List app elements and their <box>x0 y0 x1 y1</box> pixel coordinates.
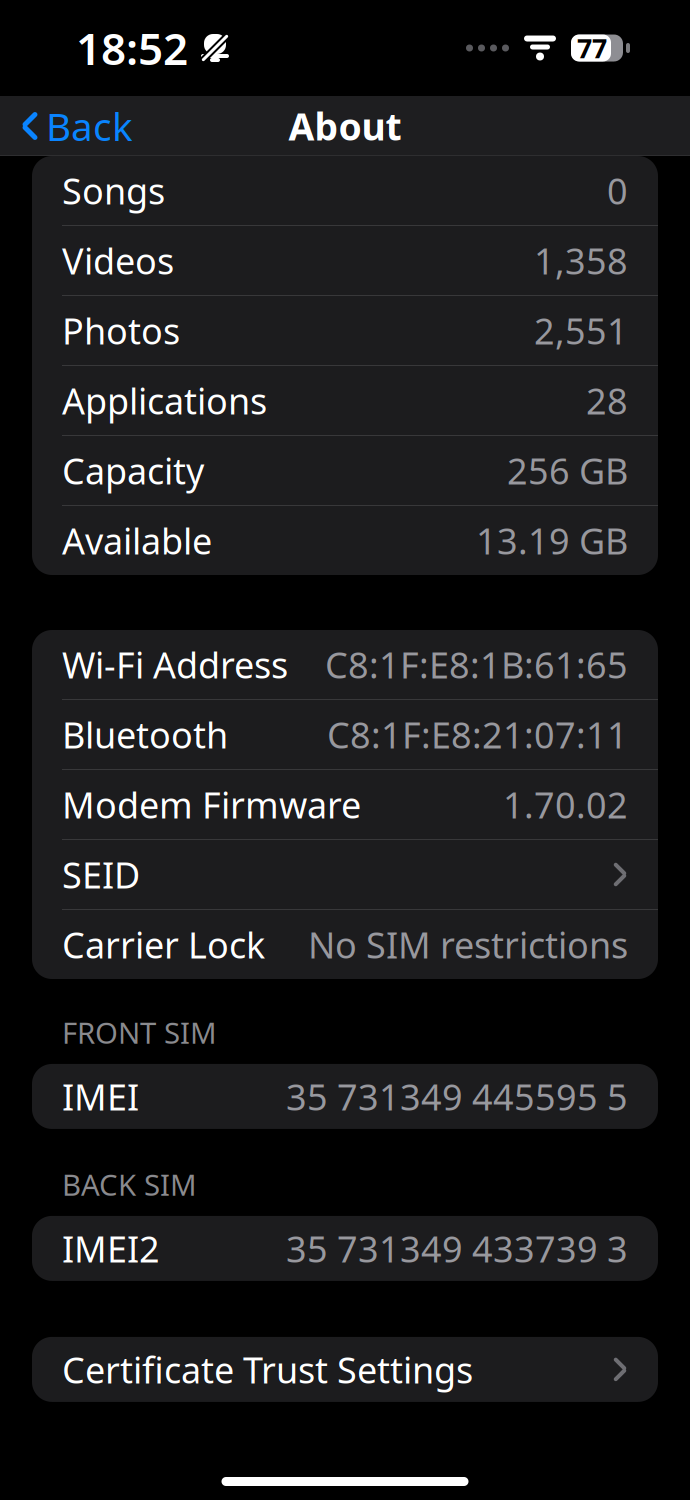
staticText: IMEI <box>62 1073 139 1120</box>
button[interactable]: Back <box>0 92 133 160</box>
button[interactable]: IMEI2 <box>32 1216 658 1281</box>
staticText: Back <box>46 100 133 152</box>
staticText: BACK SIM <box>62 1165 197 1204</box>
staticText: Applications <box>62 377 267 424</box>
button[interactable]: Songs <box>32 156 658 225</box>
button[interactable]: Photos <box>32 296 658 365</box>
staticText: Modem Firmware <box>62 781 361 828</box>
button[interactable]: Videos <box>32 226 658 295</box>
staticText: 35 731349 445595 5 <box>286 1073 628 1120</box>
staticText: 18:52 <box>76 19 188 77</box>
staticText: Capacity <box>62 447 204 494</box>
staticText: SEID <box>62 851 140 898</box>
button[interactable]: IMEI <box>32 1064 658 1129</box>
staticText: 28 <box>586 377 628 424</box>
staticText: Certificate Trust Settings <box>62 1345 473 1393</box>
staticText: About <box>288 101 401 151</box>
staticText: Videos <box>62 237 174 284</box>
staticText: 2,551 <box>534 307 628 354</box>
staticText: Carrier Lock <box>62 921 265 968</box>
button[interactable]: Capacity <box>32 436 658 505</box>
button[interactable]: Bluetooth <box>32 700 658 769</box>
staticText: FRONT SIM <box>62 1013 217 1052</box>
staticText: Songs <box>62 167 165 214</box>
staticText: Available <box>62 517 212 564</box>
staticText: 35 731349 433739 3 <box>286 1224 628 1272</box>
staticText: C8:1F:E8:21:07:11 <box>327 711 628 758</box>
staticText: IMEI2 <box>62 1224 160 1272</box>
staticText: C8:1F:E8:1B:61:65 <box>325 641 628 688</box>
staticText: 256 GB <box>507 447 628 494</box>
staticText: Wi-Fi Address <box>62 641 288 688</box>
staticText: 1.70.02 <box>503 781 628 828</box>
button[interactable]: Modem Firmware <box>32 770 658 839</box>
button[interactable]: Applications <box>32 366 658 435</box>
staticText: 13.19 GB <box>476 517 628 564</box>
staticText: 77 <box>577 30 607 66</box>
button[interactable]: SEID <box>32 840 658 909</box>
staticText: No SIM restrictions <box>308 921 628 968</box>
staticText: Photos <box>62 307 180 354</box>
staticText: 1,358 <box>534 237 628 284</box>
button[interactable]: Carrier Lock <box>32 910 658 979</box>
staticText: 0 <box>607 167 628 214</box>
button[interactable]: Wi-Fi Address <box>32 630 658 699</box>
button[interactable]: Certificate Trust Settings <box>32 1337 658 1402</box>
button[interactable]: Available <box>32 506 658 575</box>
staticText: Bluetooth <box>62 711 228 758</box>
